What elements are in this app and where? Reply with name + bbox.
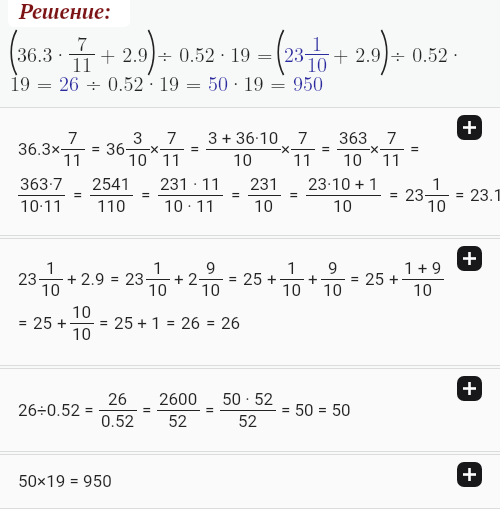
staticText: 26 [59,68,79,96]
staticText: 11 [382,150,402,170]
staticText: 7 [167,128,177,148]
staticText: + 2.9 [67,269,105,289]
staticText: = [228,269,238,289]
staticText: + 2.9 [333,39,381,67]
staticText: 25 [33,313,53,333]
staticText: 23 [284,39,304,67]
staticText: 1 [312,28,322,56]
staticText: 7 [77,28,87,56]
staticText: 23 [125,269,145,289]
button[interactable]: Add step [457,115,482,140]
staticText: 23 [18,269,38,289]
staticText: 10 [201,280,221,300]
staticText: 1 [432,174,442,194]
staticText: 1 + 9 [404,258,442,278]
staticText: 50×19 = 950 [18,471,112,491]
staticText: 23·10 + 1 [308,174,379,194]
staticText: ·19 = [228,68,293,96]
staticText: 10 [282,280,302,300]
staticText: 0.52 [101,411,135,431]
staticText: 10 [323,280,343,300]
staticText: 231 · 11 [160,174,221,194]
staticText: 3 + 36·10 [208,128,279,148]
staticText: 10 [72,302,92,322]
staticText: 11 [293,150,313,170]
staticText: 231 [250,174,279,194]
button[interactable]: 50×19 = 950 [0,455,500,508]
staticText: 10 [413,280,433,300]
staticText: 9 [206,258,216,278]
staticText: ÷ 0.52·19 = [157,39,273,67]
staticText: 11 [63,150,83,170]
staticText: Решение: [19,0,112,25]
staticText: 26 [108,389,128,409]
staticText: 10 [72,324,92,344]
staticText: 363 [339,128,368,148]
staticText: × [150,139,160,159]
staticText: 10·11 [20,196,63,216]
staticText: 26 [181,313,201,333]
staticText: = 50 = 50 [281,400,351,420]
button[interactable]: 23 [0,239,500,365]
staticText: = [206,313,216,333]
staticText: = [389,185,399,205]
staticText: = [73,185,83,205]
staticText: 23.1 [470,185,482,205]
button[interactable]: 36.3× [0,108,500,235]
staticText: + [267,269,277,289]
staticText: 1 [153,258,163,278]
staticText: = [321,139,331,159]
staticText: 10 [148,280,168,300]
staticText: 10 [41,280,61,300]
staticText: 52 [168,411,188,431]
staticText: ÷ 0.52·19 = [79,68,208,96]
staticText: = [231,185,241,205]
staticText: 19 = [10,68,59,96]
staticText: + [308,269,318,289]
staticText: 10 [333,196,353,216]
staticText: + [174,269,184,289]
staticText: 9 [328,258,338,278]
staticText: = [141,185,151,205]
staticText: 50 · 52 [222,389,274,409]
staticText: = [99,313,109,333]
staticText: 2541 [92,174,131,194]
staticText: 25 [243,269,263,289]
staticText: × [370,139,380,159]
staticText: 2600 [159,389,198,409]
staticText: × [281,139,291,159]
staticText: 7 [387,128,397,148]
staticText: 10 [254,196,274,216]
staticText: 110 [97,196,126,216]
button[interactable]: Add step [457,246,482,271]
staticText: 3 [133,128,143,148]
staticText: 26÷0.52 = [18,400,94,420]
staticText: 10 [343,150,363,170]
staticText: = [289,185,299,205]
staticText: = [18,313,28,333]
staticText: 50 [208,68,228,96]
staticText: = [190,139,200,159]
staticText: 7 [68,128,78,148]
staticText: + [57,313,67,333]
staticText: + 2.9 [100,39,148,67]
button[interactable]: Add step [457,376,482,401]
staticText: 36 [106,139,126,159]
button[interactable]: 26÷0.52 = [0,369,500,451]
staticText: 7 [298,128,308,148]
staticText: = [410,139,420,159]
staticText: 10 [233,150,253,170]
staticText: 2 [188,269,198,289]
staticText: = [91,139,101,159]
staticText: 11 [72,49,92,77]
staticText: 25 [365,269,385,289]
staticText: 23 [405,185,425,205]
staticText: 10 · 11 [164,196,216,216]
staticText: 1 [287,258,297,278]
button[interactable]: Add step [457,462,482,487]
staticText: = [350,269,360,289]
staticText: = [166,313,176,333]
staticText: 363·7 [20,174,63,194]
staticText: 26 [221,313,241,333]
staticText: + [389,269,399,289]
